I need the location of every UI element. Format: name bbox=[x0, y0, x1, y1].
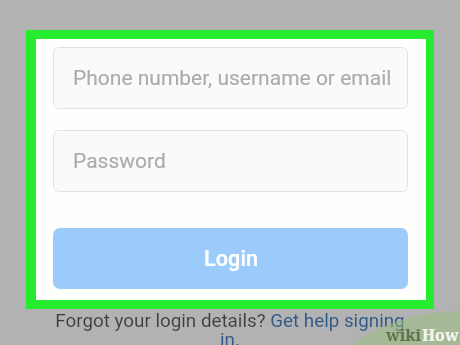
staticText: Forgot your login details? Get help sign… bbox=[52, 310, 408, 345]
staticText: Login bbox=[204, 246, 258, 271]
staticText: wiki bbox=[386, 324, 422, 345]
staticText: How bbox=[422, 324, 459, 345]
button[interactable]: Login bbox=[53, 228, 408, 289]
staticText: Phone number, username or email bbox=[73, 66, 392, 91]
staticText: Password bbox=[73, 149, 166, 174]
button[interactable]: Phone number, username or email bbox=[53, 47, 408, 109]
button[interactable]: Password bbox=[53, 130, 408, 192]
button[interactable]: Forgot your login details? Get help sign… bbox=[0, 309, 460, 345]
